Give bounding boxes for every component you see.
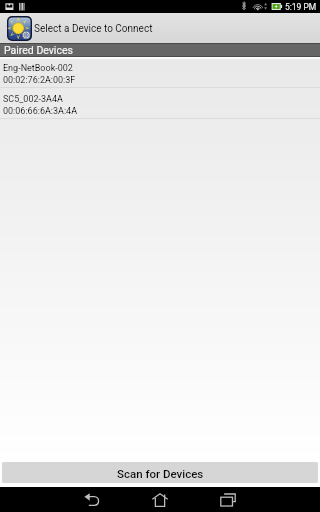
staticText: 5:19 PM [285,2,317,12]
button[interactable]: Home [136,487,184,512]
staticText: Eng-NetBook-002 [3,63,73,74]
button[interactable]: SC5_002-3A4A [0,88,320,119]
staticText: Select a Device to Connect [34,23,153,35]
button[interactable]: Eng-NetBook-002 [0,57,320,88]
staticText: SC5_002-3A4A [3,94,63,105]
button[interactable]: Scan for Devices [2,462,318,483]
button[interactable]: Back [68,487,116,512]
staticText: Paired Devices [4,44,73,56]
button[interactable]: Recent apps [204,487,252,512]
staticText: 00:02:76:2A:00:3F [3,75,76,86]
staticText: 00:06:66:6A:3A:4A [3,106,78,117]
staticText: Scan for Devices [117,467,204,480]
